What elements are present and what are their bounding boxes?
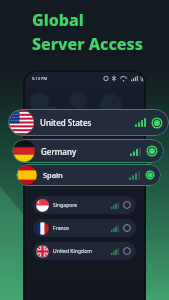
staticText: Spain: [43, 170, 63, 180]
staticText: France: [53, 225, 69, 232]
staticText: 5:13 PM: [32, 76, 48, 81]
button[interactable]: France: [33, 219, 136, 237]
button[interactable]: Singapore: [33, 196, 136, 214]
button[interactable]: United States: [8, 109, 169, 136]
button[interactable]: Germany: [12, 139, 164, 163]
staticText: Singapore: [53, 202, 78, 209]
staticText: Global: [32, 9, 84, 31]
button[interactable]: United Kingdom: [33, 242, 136, 260]
staticText: United States: [40, 117, 92, 128]
staticText: Server Access: [32, 33, 143, 55]
staticText: United Kingdom: [53, 248, 92, 255]
staticText: Germany: [41, 146, 77, 157]
button[interactable]: Spain: [16, 164, 161, 186]
